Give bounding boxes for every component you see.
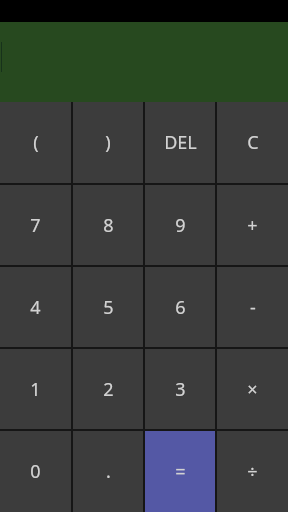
button[interactable]: 0 bbox=[0, 431, 71, 512]
button[interactable]: Minus bbox=[217, 267, 288, 347]
button[interactable]: Decimal point bbox=[73, 431, 143, 512]
button[interactable]: Equals bbox=[145, 431, 215, 512]
staticText: = bbox=[175, 459, 186, 484]
button[interactable]: Divide bbox=[217, 431, 288, 512]
button[interactable]: 4 bbox=[0, 267, 71, 347]
button[interactable]: Close parenthesis bbox=[73, 102, 143, 183]
button[interactable]: DEL bbox=[145, 102, 215, 183]
staticText: 2 bbox=[103, 377, 114, 402]
staticText: DEL bbox=[164, 130, 197, 155]
button[interactable]: Plus bbox=[217, 185, 288, 265]
staticText: 3 bbox=[175, 377, 186, 402]
staticText: 6 bbox=[175, 295, 186, 320]
button[interactable]: 3 bbox=[145, 349, 215, 429]
button[interactable]: Open parenthesis bbox=[0, 102, 71, 183]
staticText: 4 bbox=[30, 295, 41, 320]
staticText: - bbox=[250, 295, 256, 320]
button[interactable]: 1 bbox=[0, 349, 71, 429]
staticText: 1 bbox=[30, 377, 41, 402]
staticText: + bbox=[247, 213, 258, 238]
staticText: C bbox=[247, 130, 259, 155]
button[interactable]: Multiply bbox=[217, 349, 288, 429]
button[interactable]: 2 bbox=[73, 349, 143, 429]
staticText: 5 bbox=[103, 295, 114, 320]
staticText: 0 bbox=[30, 459, 41, 484]
staticText: ( bbox=[33, 130, 39, 155]
staticText: . bbox=[106, 459, 111, 484]
staticText: ÷ bbox=[247, 459, 258, 484]
button[interactable]: 5 bbox=[73, 267, 143, 347]
button[interactable]: C bbox=[217, 102, 288, 183]
staticText: 8 bbox=[103, 213, 114, 238]
staticText: × bbox=[247, 377, 258, 402]
button[interactable]: 7 bbox=[0, 185, 71, 265]
staticText: 9 bbox=[175, 213, 186, 238]
staticText: ) bbox=[105, 130, 111, 155]
staticText: 7 bbox=[30, 213, 41, 238]
button[interactable]: 8 bbox=[73, 185, 143, 265]
button[interactable]: 6 bbox=[145, 267, 215, 347]
button[interactable]: 9 bbox=[145, 185, 215, 265]
